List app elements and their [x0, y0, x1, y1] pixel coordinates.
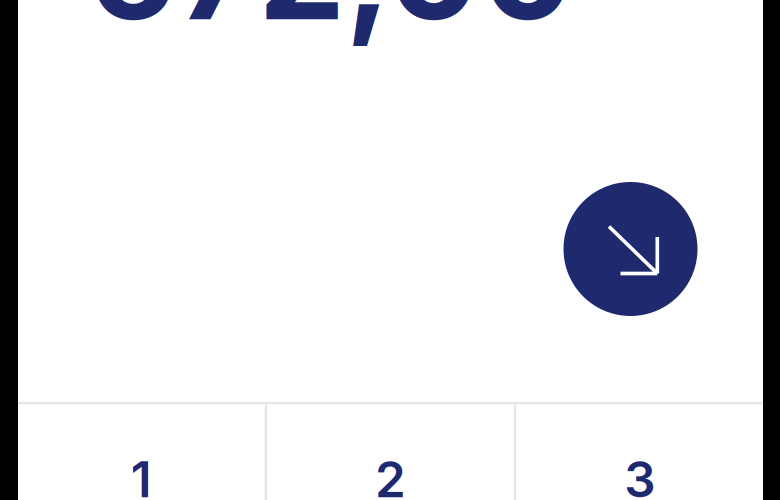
staticText: 672,00	[87, 0, 575, 53]
staticText: 2	[375, 449, 406, 500]
button[interactable]: Request money	[563, 182, 697, 316]
button[interactable]: 2	[267, 404, 514, 500]
button[interactable]: 1	[18, 404, 265, 500]
button[interactable]: 3	[516, 404, 763, 500]
staticText: 3	[624, 449, 655, 500]
staticText: 1	[131, 449, 152, 500]
